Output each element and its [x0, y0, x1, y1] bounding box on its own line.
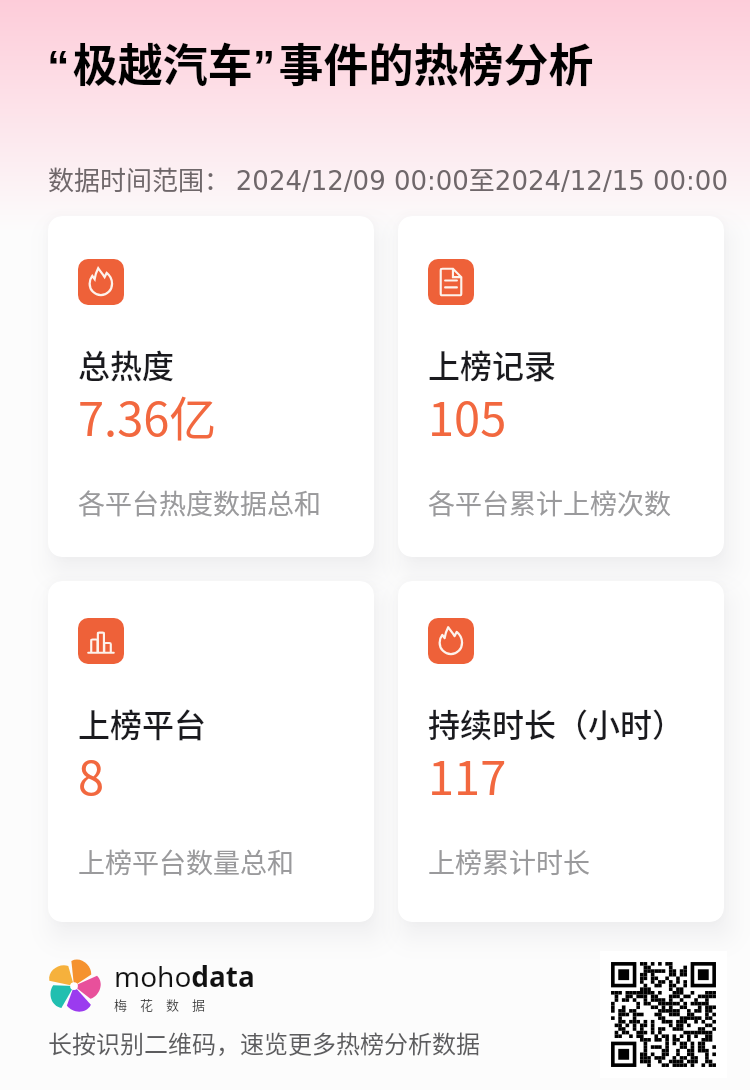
staticText: 7.36亿 [78, 381, 217, 449]
staticText: 上榜记录 [428, 341, 557, 387]
staticText: 长按识别二维码，速览更多热榜分析数据 [48, 1025, 480, 1060]
staticText: 上榜累计时长 [428, 842, 590, 881]
staticText: “极越汽车”事件的热榜分析 [47, 30, 594, 95]
staticText: 总热度 [78, 341, 175, 387]
staticText: mohodata [114, 957, 255, 995]
staticText: 上榜平台 [78, 700, 207, 746]
button[interactable]: 上榜平台 [48, 581, 374, 922]
staticText: 梅 花 数 据 [114, 995, 206, 1014]
staticText: 8 [78, 740, 105, 808]
button[interactable]: 上榜记录 [398, 216, 724, 557]
staticText: 数据时间范围： 2024/12/09 00:00至2024/12/15 00:0… [48, 160, 728, 198]
staticText: 各平台热度数据总和 [78, 483, 321, 522]
staticText: 上榜平台数量总和 [78, 842, 294, 881]
staticText: 117 [428, 740, 507, 808]
staticText: 各平台累计上榜次数 [428, 483, 671, 522]
button[interactable]: 总热度 [48, 216, 374, 557]
button[interactable]: 持续时长（小时） [398, 581, 724, 922]
staticText: 105 [428, 381, 507, 449]
staticText: 持续时长（小时） [428, 700, 685, 746]
other: QR code [600, 951, 727, 1078]
